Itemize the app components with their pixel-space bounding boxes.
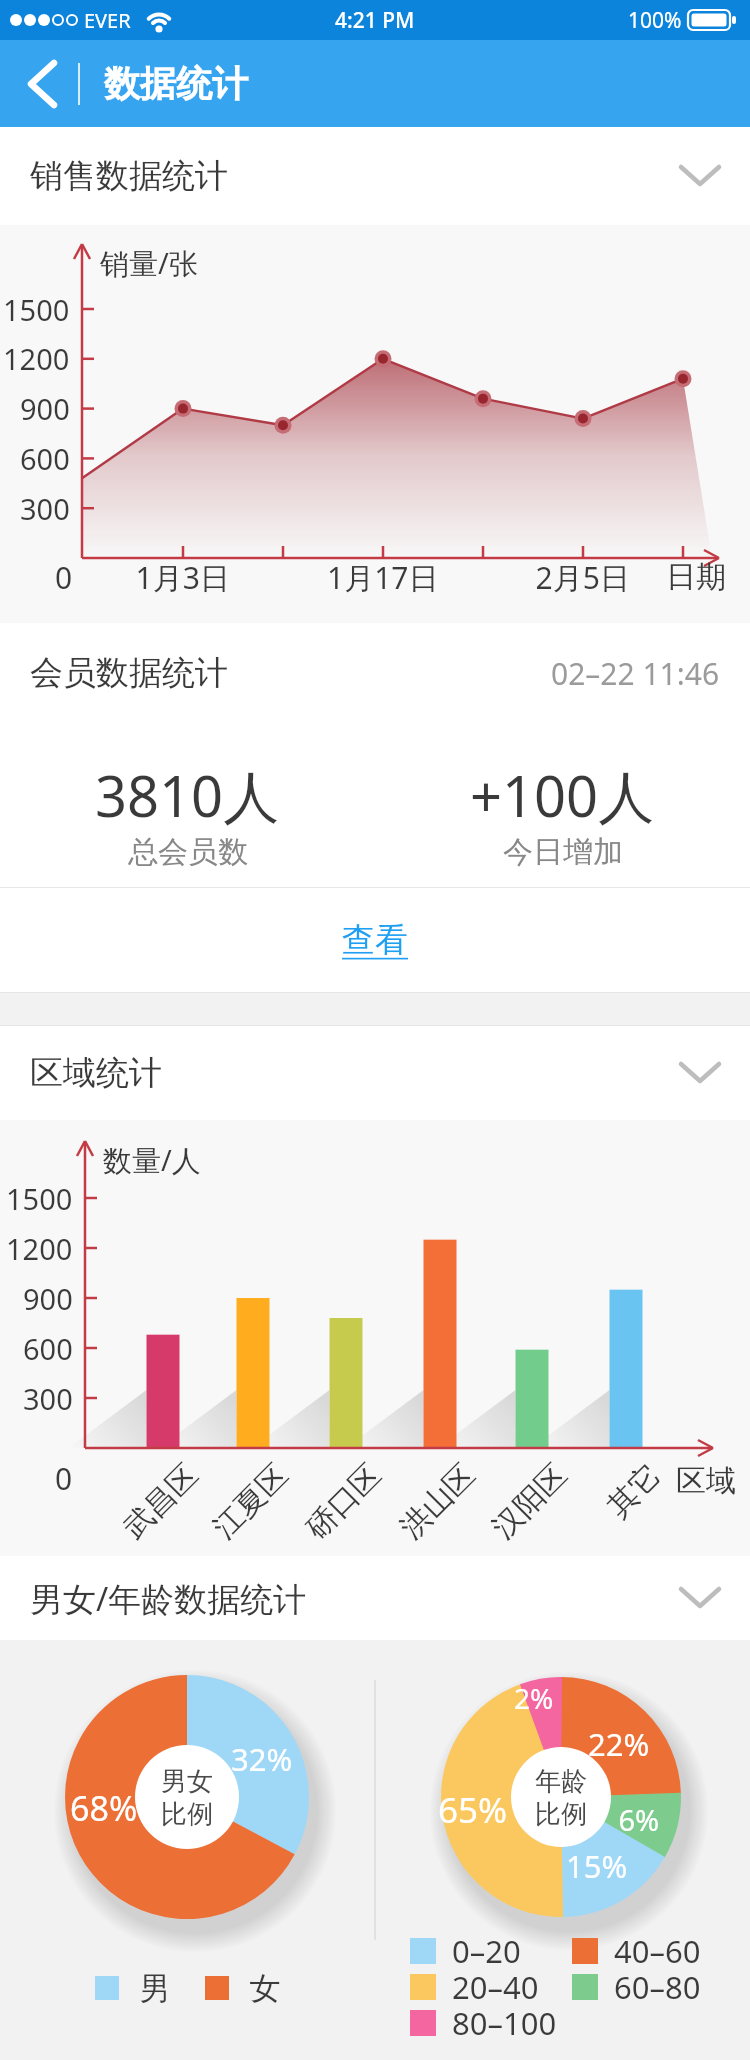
button[interactable]: 查看 (0, 888, 750, 992)
staticText: 02–22 11:46 (551, 653, 720, 694)
staticText: 查看 (342, 919, 408, 961)
staticText: 男女/年龄数据统计 (30, 1576, 307, 1621)
staticText: 今日增加 (503, 833, 623, 871)
staticText: 区域统计 (30, 1052, 162, 1094)
staticText: 数据统计 (104, 61, 248, 106)
staticText: 3810人 (95, 757, 280, 833)
button[interactable] (20, 62, 64, 106)
staticText: 总会员数 (128, 833, 248, 871)
button[interactable]: 区域统计 (0, 1026, 750, 1120)
staticText: 销售数据统计 (30, 155, 228, 197)
button[interactable]: 销售数据统计 (0, 127, 750, 225)
staticText: 4:21 PM (335, 6, 415, 35)
staticText: 会员数据统计 (30, 652, 228, 694)
staticText: 100% (628, 6, 682, 35)
staticText: +100人 (470, 757, 655, 833)
button[interactable]: 男女/年龄数据统计 (0, 1556, 750, 1640)
staticText: EVER (84, 7, 131, 34)
